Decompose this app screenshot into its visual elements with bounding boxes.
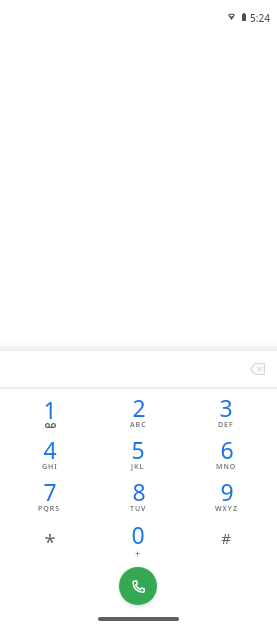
staticText: 5 (131, 434, 145, 465)
button[interactable]: 8 (94, 475, 182, 517)
staticText: GHI (42, 462, 58, 472)
staticText: 8 (132, 476, 146, 507)
button[interactable]: * (5, 517, 94, 559)
button[interactable]: Call (119, 567, 157, 605)
staticText: DEF (218, 420, 234, 430)
button[interactable]: 0 (94, 517, 182, 559)
staticText: 1 (43, 394, 57, 425)
button[interactable]: 4 (5, 433, 94, 475)
staticText: 4 (43, 434, 57, 465)
staticText: 5:24 (250, 11, 270, 25)
button[interactable]: 5 (94, 433, 182, 475)
staticText: * (44, 528, 56, 555)
button[interactable]: 2 (94, 391, 182, 433)
staticText: TUV (130, 504, 147, 514)
staticText: MNO (216, 462, 237, 472)
staticText: 6 (220, 434, 234, 465)
staticText: + (135, 547, 141, 558)
staticText: 3 (219, 392, 233, 423)
staticText: WXYZ (215, 504, 238, 514)
staticText: # (221, 528, 231, 548)
button[interactable]: 3 (182, 391, 270, 433)
staticText: PQRS (38, 504, 61, 514)
staticText: 0 (131, 519, 145, 550)
staticText: 2 (132, 392, 146, 423)
button[interactable]: 9 (182, 475, 270, 517)
button[interactable]: # (182, 517, 270, 559)
staticText: JKL (131, 462, 145, 472)
staticText: 7 (43, 476, 57, 507)
button[interactable]: 1 (5, 391, 94, 433)
staticText: 9 (220, 476, 234, 507)
button[interactable]: 7 (5, 475, 94, 517)
button[interactable]: Backspace (241, 353, 273, 385)
button[interactable]: 6 (182, 433, 270, 475)
staticText: ABC (130, 420, 147, 430)
